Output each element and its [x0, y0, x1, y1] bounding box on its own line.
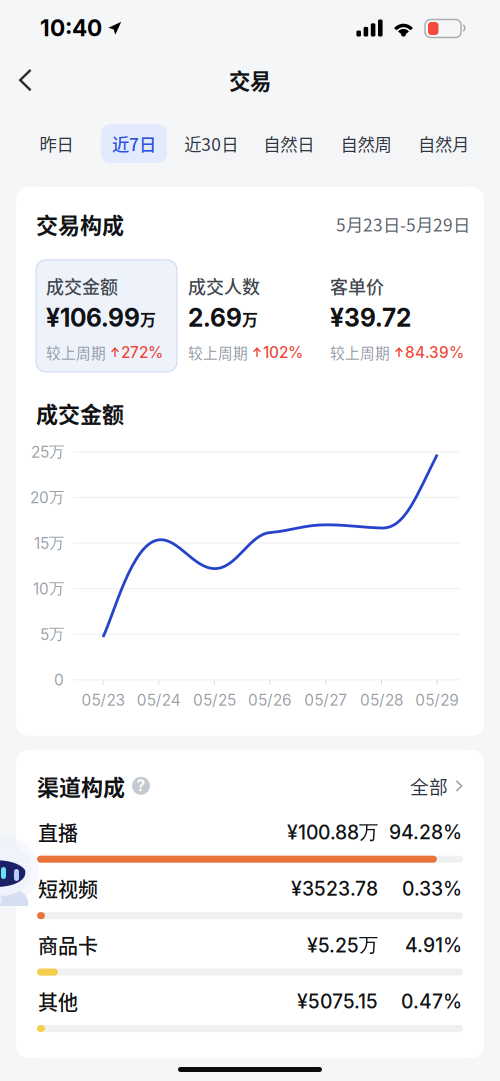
staticText: 20万	[30, 488, 64, 507]
staticText: 近7日	[112, 131, 156, 156]
staticText: 交易构成	[36, 208, 124, 240]
staticText: ¥5.25万	[307, 933, 378, 957]
staticText: 渠道构成	[37, 770, 125, 802]
staticText: 05/26	[248, 691, 292, 709]
staticText: 直播	[38, 818, 78, 847]
staticText: 05/24	[137, 691, 181, 709]
staticText: 近30日	[184, 131, 238, 156]
button[interactable]: 自然周	[333, 124, 399, 163]
staticText: 10万	[33, 579, 64, 598]
staticText: 94.28%	[389, 820, 462, 844]
staticText: 万	[242, 307, 258, 330]
staticText: 5万	[40, 625, 64, 644]
staticText: 交易	[229, 65, 271, 95]
staticText: 2.69	[188, 303, 242, 333]
staticText: 全部	[410, 772, 448, 799]
button[interactable]: 昨日	[23, 124, 89, 163]
staticText: 102%	[263, 343, 303, 362]
staticText: 272%	[121, 343, 163, 362]
button[interactable]: 近7日	[101, 124, 167, 163]
button[interactable]: 直播	[37, 818, 463, 863]
staticText: 05/23	[81, 691, 124, 709]
staticText: 成交金额	[36, 397, 124, 429]
staticText: 其他	[38, 987, 78, 1016]
staticText: 自然周	[341, 131, 392, 156]
staticText: 自然月	[418, 131, 469, 156]
staticText: 较上周期	[46, 342, 106, 363]
staticText: 成交人数	[188, 273, 260, 299]
staticText: 05/25	[193, 691, 236, 709]
staticText: ¥100.88万	[287, 820, 378, 844]
staticText: ¥3523.78	[291, 877, 378, 900]
staticText: ?	[136, 776, 145, 795]
staticText: 84.39%	[405, 343, 464, 362]
staticText: 05/27	[304, 691, 347, 709]
button[interactable]: 返回	[0, 56, 49, 103]
staticText: 0.33%	[402, 877, 462, 900]
staticText: 客单价	[330, 273, 384, 299]
staticText: 5月23日-5月29日	[336, 211, 470, 236]
button[interactable]: 自然月	[410, 124, 476, 163]
staticText: 05/28	[360, 691, 403, 709]
staticText: 0	[54, 671, 64, 689]
staticText: ¥106.99	[46, 303, 140, 333]
staticText: 15万	[34, 533, 64, 553]
button[interactable]: 其他	[37, 987, 463, 1032]
button[interactable]: 自然日	[256, 124, 322, 163]
button[interactable]: 智能助手	[0, 836, 34, 906]
staticText: 万	[140, 307, 156, 330]
staticText: 10:40	[40, 14, 102, 42]
staticText: 较上周期	[188, 342, 248, 363]
button[interactable]: 近30日	[178, 124, 244, 163]
staticText: 昨日	[39, 131, 73, 156]
staticText: 商品卡	[38, 931, 98, 960]
button[interactable]: 商品卡	[37, 931, 463, 976]
staticText: 较上周期	[330, 342, 390, 363]
staticText: 自然日	[263, 131, 314, 156]
staticText: ¥5075.15	[297, 990, 378, 1013]
staticText: 4.91%	[405, 933, 462, 957]
staticText: 成交金额	[46, 273, 118, 299]
staticText: 05/29	[415, 691, 459, 709]
staticText: 0.47%	[401, 990, 462, 1013]
staticText: 25万	[31, 442, 64, 461]
staticText: ¥39.72	[330, 303, 411, 333]
button[interactable]: 短视频	[37, 874, 463, 919]
staticText: 短视频	[38, 874, 98, 903]
button[interactable]: 全部	[410, 772, 463, 799]
